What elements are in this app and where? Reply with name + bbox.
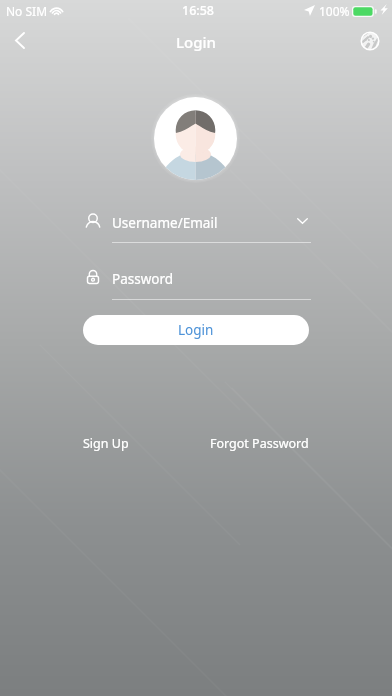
staticText: Forgot Password <box>210 435 309 452</box>
staticText: Login <box>176 32 216 52</box>
staticText: Username/Email <box>112 214 218 232</box>
staticText: Password <box>112 270 174 288</box>
button[interactable]: Password <box>83 262 309 299</box>
staticText: 100% <box>319 3 350 19</box>
button[interactable]: Login <box>83 315 309 345</box>
button[interactable]: Back <box>0 18 42 62</box>
button[interactable]: Language <box>348 19 392 63</box>
button[interactable]: Username/Email <box>83 206 309 242</box>
staticText: Login <box>178 321 214 339</box>
button[interactable]: Sign Up <box>83 434 129 452</box>
staticText: Sign Up <box>83 435 129 452</box>
button[interactable]: Forgot Password <box>210 434 309 452</box>
staticText: No SIM <box>6 3 48 19</box>
staticText: 16:58 <box>182 2 215 19</box>
